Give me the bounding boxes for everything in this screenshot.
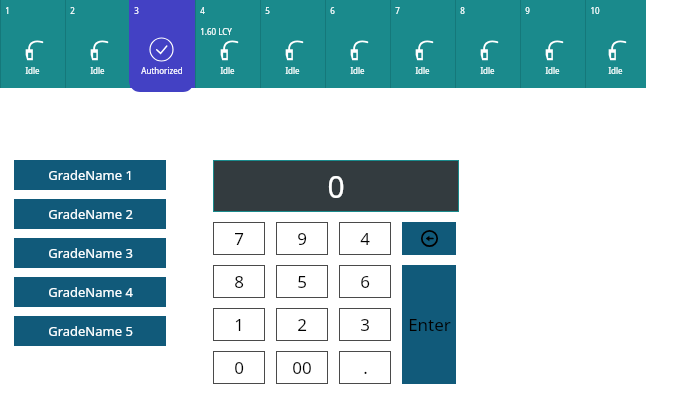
- staticText: GradeName 4: [48, 283, 133, 301]
- button[interactable]: 00: [276, 351, 328, 384]
- staticText: Enter: [408, 313, 451, 336]
- button[interactable]: 9: [276, 222, 328, 255]
- button[interactable]: 4: [195, 0, 260, 88]
- staticText: 1: [5, 5, 10, 16]
- button[interactable]: 7: [390, 0, 455, 88]
- staticText: 7: [234, 227, 244, 250]
- staticText: Idle: [415, 65, 430, 76]
- staticText: .: [363, 356, 368, 379]
- button[interactable]: 6: [325, 0, 390, 88]
- button[interactable]: 8: [213, 265, 265, 298]
- staticText: GradeName 5: [48, 322, 133, 340]
- button[interactable]: Backspace: [402, 222, 456, 255]
- button[interactable]: GradeName 1: [14, 160, 166, 190]
- button[interactable]: 0: [213, 351, 265, 384]
- staticText: Idle: [25, 65, 40, 76]
- button[interactable]: 1: [213, 308, 265, 341]
- staticText: GradeName 3: [48, 244, 133, 262]
- button[interactable]: 3: [339, 308, 391, 341]
- button[interactable]: 3: [129, 0, 194, 92]
- button[interactable]: GradeName 3: [14, 238, 166, 268]
- button[interactable]: 8: [455, 0, 520, 88]
- button[interactable]: Enter: [402, 265, 456, 384]
- staticText: 2: [297, 313, 307, 336]
- button[interactable]: GradeName 2: [14, 199, 166, 229]
- staticText: 3: [134, 5, 139, 16]
- button[interactable]: 9: [520, 0, 585, 88]
- staticText: Idle: [608, 65, 623, 76]
- staticText: 6: [360, 270, 370, 293]
- staticText: 0: [327, 166, 345, 207]
- button[interactable]: GradeName 4: [14, 277, 166, 307]
- button[interactable]: GradeName 5: [14, 316, 166, 346]
- staticText: 5: [265, 5, 270, 16]
- staticText: 2: [70, 5, 75, 16]
- staticText: 4: [200, 5, 205, 16]
- staticText: 0: [234, 356, 244, 379]
- staticText: 3: [360, 313, 370, 336]
- staticText: Idle: [90, 65, 105, 76]
- button[interactable]: 5: [260, 0, 325, 88]
- staticText: Idle: [220, 65, 235, 76]
- staticText: 6: [330, 5, 335, 16]
- button[interactable]: 7: [213, 222, 265, 255]
- staticText: Idle: [480, 65, 495, 76]
- button[interactable]: 4: [339, 222, 391, 255]
- staticText: Authorized: [141, 65, 183, 76]
- staticText: 1.60 LCY: [200, 26, 232, 37]
- staticText: 1: [234, 313, 244, 336]
- staticText: GradeName 2: [48, 205, 133, 223]
- button[interactable]: 2: [65, 0, 130, 88]
- button[interactable]: 5: [276, 265, 328, 298]
- staticText: 9: [525, 5, 530, 16]
- button[interactable]: 10: [585, 0, 646, 88]
- staticText: Idle: [350, 65, 365, 76]
- staticText: 8: [234, 270, 244, 293]
- staticText: Idle: [545, 65, 560, 76]
- staticText: Idle: [285, 65, 300, 76]
- staticText: GradeName 1: [48, 166, 133, 184]
- button[interactable]: [130, 0, 195, 88]
- staticText: 7: [395, 5, 400, 16]
- button[interactable]: .: [339, 351, 391, 384]
- button[interactable]: 6: [339, 265, 391, 298]
- staticText: 4: [360, 227, 370, 250]
- button[interactable]: 1: [0, 0, 65, 88]
- staticText: 8: [460, 5, 465, 16]
- staticText: 00: [292, 356, 312, 379]
- staticText: 9: [297, 227, 307, 250]
- staticText: 5: [297, 270, 307, 293]
- staticText: 10: [590, 5, 600, 16]
- button[interactable]: 2: [276, 308, 328, 341]
